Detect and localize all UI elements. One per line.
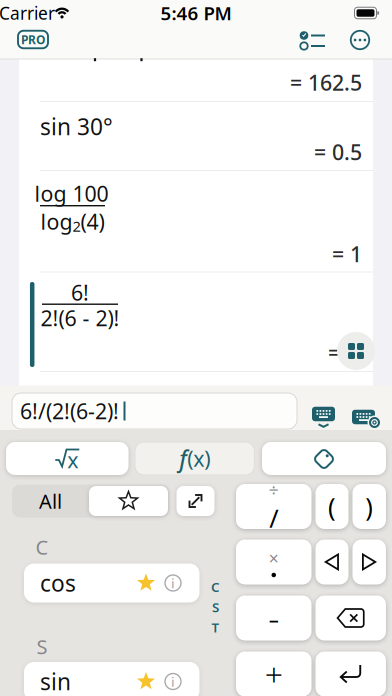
button[interactable]: multiply xyxy=(236,539,311,584)
staticText: = 162.5 xyxy=(290,68,362,97)
button[interactable]: plus xyxy=(236,651,311,696)
staticText: 6!/(2!(6-2)! xyxy=(20,397,119,425)
staticText: + xyxy=(265,653,283,695)
button[interactable]: History entry sin 30 equals 0.5 xyxy=(19,101,373,170)
button[interactable]: Expression input field xyxy=(12,393,297,429)
staticText: sin 30° xyxy=(40,111,113,141)
staticText: T xyxy=(211,618,219,636)
staticText: PRO xyxy=(21,31,45,47)
staticText: All xyxy=(39,488,62,514)
button[interactable]: delete xyxy=(315,595,386,640)
button[interactable]: minus xyxy=(236,595,311,640)
staticText: cos xyxy=(40,568,76,598)
staticText: C xyxy=(35,534,48,560)
button[interactable]: Hide keyboard xyxy=(309,406,337,428)
staticText: = 0.5 xyxy=(314,138,362,166)
staticText: (4) xyxy=(80,207,104,236)
staticText: f xyxy=(179,443,187,473)
button[interactable]: History entry 6 factorial over 2 factori… xyxy=(19,272,373,371)
button[interactable]: Saved expressions xyxy=(262,442,386,475)
staticText: 6! xyxy=(71,278,89,307)
button[interactable]: open parenthesis xyxy=(315,484,348,529)
button[interactable]: return xyxy=(315,651,386,696)
button[interactable]: Functions keyboard xyxy=(135,442,254,475)
button[interactable]: PRO xyxy=(16,28,50,50)
button[interactable]: divide xyxy=(236,484,311,529)
button[interactable]: More options xyxy=(347,27,373,53)
button[interactable]: History entry, equals 162.5 xyxy=(19,59,373,101)
staticText: - xyxy=(268,595,279,641)
staticText: ) xyxy=(365,490,373,523)
staticText: / xyxy=(269,501,278,535)
staticText: Carrier xyxy=(0,1,55,24)
button[interactable]: Switch keyboard xyxy=(351,406,381,428)
button[interactable]: Show result xyxy=(337,332,375,370)
staticText: 2!(6 - 2)! xyxy=(40,304,119,332)
staticText: = xyxy=(328,338,340,367)
staticText: (x) xyxy=(187,444,210,473)
button[interactable]: History entry log 100 over log2(4) equal… xyxy=(19,170,373,272)
staticText: i xyxy=(171,673,175,690)
button[interactable]: Favourite functions xyxy=(89,486,168,516)
staticText: log xyxy=(40,207,72,236)
button[interactable]: sin function xyxy=(24,662,199,696)
button[interactable]: close parenthesis xyxy=(352,484,386,529)
button[interactable]: Basic keyboard xyxy=(6,442,128,475)
staticText: sin xyxy=(40,666,71,696)
button[interactable]: move cursor left xyxy=(315,539,348,584)
button[interactable]: All functions xyxy=(12,484,89,517)
staticText: = 1 xyxy=(332,240,362,268)
staticText: S xyxy=(36,633,47,660)
staticText: 5:46 PM xyxy=(160,1,231,25)
staticText: log 100 xyxy=(34,179,108,208)
staticText: S xyxy=(212,598,219,616)
staticText: ( xyxy=(328,490,336,523)
staticText: x xyxy=(67,446,78,474)
staticText: × xyxy=(269,547,279,570)
staticText: ÷ xyxy=(269,478,279,501)
staticText: i xyxy=(171,574,175,592)
button[interactable]: cos function xyxy=(24,563,199,602)
staticText: C xyxy=(211,578,220,596)
button[interactable]: Expand xyxy=(176,486,214,516)
button[interactable]: move cursor right xyxy=(352,539,386,584)
button[interactable]: Select history items xyxy=(296,27,328,53)
staticText: 2 xyxy=(72,216,80,236)
